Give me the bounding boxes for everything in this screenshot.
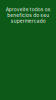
staticText: Aproveite todos os benefícios do seu sup…: [5, 6, 50, 24]
